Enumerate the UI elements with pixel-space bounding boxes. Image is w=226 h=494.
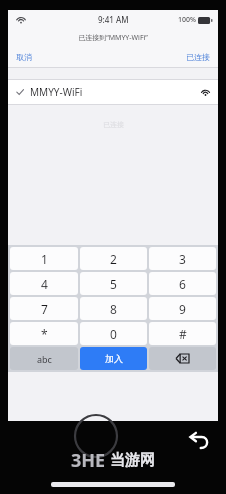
button[interactable]: 5 xyxy=(80,272,147,295)
button[interactable]: MMYY-WiFi xyxy=(8,80,218,104)
staticText: * xyxy=(41,326,48,342)
staticText: # xyxy=(179,326,187,342)
staticText: 3HE xyxy=(71,448,106,473)
staticText: 9 xyxy=(179,301,186,317)
button[interactable]: Delete xyxy=(149,347,216,370)
staticText: 100% xyxy=(178,15,196,25)
staticText: abc xyxy=(37,353,52,365)
staticText: 已连接 xyxy=(103,120,124,129)
button[interactable]: 加入 xyxy=(80,347,147,370)
button[interactable]: 0 xyxy=(80,322,147,345)
button[interactable]: # xyxy=(149,322,216,345)
staticText: 8 xyxy=(110,301,117,317)
staticText: MMYY-WiFi xyxy=(30,85,83,99)
button[interactable]: 7 xyxy=(10,297,78,320)
button[interactable]: 8 xyxy=(80,297,147,320)
staticText: 3 xyxy=(179,251,186,267)
staticText: 4 xyxy=(41,276,48,292)
staticText: 7 xyxy=(41,301,48,317)
button[interactable]: 已连接 xyxy=(178,48,218,66)
staticText: 取消 xyxy=(16,52,32,62)
staticText: 加入 xyxy=(105,353,123,364)
staticText: 2 xyxy=(110,251,117,267)
staticText: 已连接 xyxy=(186,52,210,62)
button[interactable]: 6 xyxy=(149,272,216,295)
staticText: 1 xyxy=(41,251,48,267)
other: Wi-Fi signal xyxy=(201,88,210,97)
staticText: 6 xyxy=(179,276,186,292)
staticText: 0 xyxy=(110,326,117,342)
staticText: 9:41 AM xyxy=(98,14,129,25)
staticText: 5 xyxy=(110,276,117,292)
button[interactable]: 2 xyxy=(80,247,147,270)
button[interactable]: 取消 xyxy=(8,48,40,66)
button[interactable]: 9 xyxy=(149,297,216,320)
button[interactable]: 3 xyxy=(149,247,216,270)
staticText: 当游网 xyxy=(110,451,155,470)
staticText: 已连接到“MMYY-WiFi” xyxy=(78,33,148,43)
button[interactable]: * xyxy=(10,322,78,345)
button[interactable]: 4 xyxy=(10,272,78,295)
button[interactable]: Back xyxy=(188,430,210,452)
button[interactable]: 1 xyxy=(10,247,78,270)
button[interactable]: abc xyxy=(10,347,78,370)
